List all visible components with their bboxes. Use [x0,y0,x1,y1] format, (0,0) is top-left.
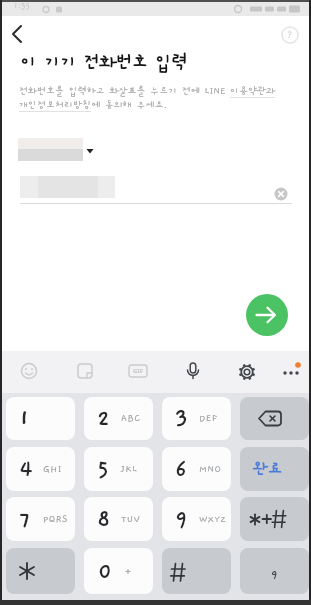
button[interactable] [162,548,231,594]
staticText: GIF [133,367,143,375]
button[interactable] [246,294,288,336]
button[interactable]: 6 [162,447,231,491]
staticText: ABC [121,413,141,424]
button[interactable]: 2 [84,397,153,440]
button[interactable] [4,20,34,48]
button[interactable]: 9 [162,497,231,541]
button[interactable]: 7 [6,497,75,541]
staticText: ? [287,30,293,40]
staticText: JKL [121,464,138,475]
staticText: GHI [43,464,63,475]
staticText: 완료 [253,460,283,478]
staticText: 전화번호를 입력하고 화살표를 누르기 전에 LINE 이용약관과 [19,86,276,97]
button[interactable] [6,548,75,594]
button[interactable]: 4 [6,447,75,491]
button[interactable]: GIF [122,355,154,387]
button[interactable] [240,497,309,541]
button[interactable] [240,397,309,440]
staticText: 5 [97,457,110,482]
button[interactable]: 1 [6,397,75,440]
button[interactable] [18,138,98,162]
staticText: 6 [175,457,188,482]
button[interactable]: ? [281,26,299,44]
staticText: WXYZ [199,514,227,525]
staticText: 9 [271,568,278,581]
staticText: DEF [199,413,218,424]
button[interactable]: 3 [162,397,231,440]
button[interactable] [13,355,45,387]
staticText: 4 [19,457,33,482]
staticText: 8 [97,507,111,532]
button[interactable]: 5 [84,447,153,491]
button[interactable] [276,355,308,387]
staticText: 7 [19,507,31,532]
staticText: TUV [121,514,141,525]
button[interactable]: 8 [84,497,153,541]
staticText: 1:35 [14,2,31,11]
button[interactable] [177,355,209,387]
button[interactable] [69,355,101,387]
staticText: 0 [98,559,113,584]
staticText: 3 [175,406,189,431]
button[interactable]: 0 [84,548,153,594]
staticText: 9 [175,507,188,532]
staticText: 2 [97,406,111,431]
staticText: + [124,565,133,578]
staticText: PQRS [43,514,69,525]
button[interactable] [273,186,289,202]
staticText: 1 [19,406,30,431]
staticText: MNO [199,464,222,475]
button[interactable]: 완료 [240,447,309,491]
button[interactable] [231,356,263,388]
button[interactable]: 9 [240,548,309,594]
staticText: 개인정보처리방침에 동의해 주세요. [19,100,168,111]
staticText: 이 기기 전화번호 입력 [20,52,188,73]
